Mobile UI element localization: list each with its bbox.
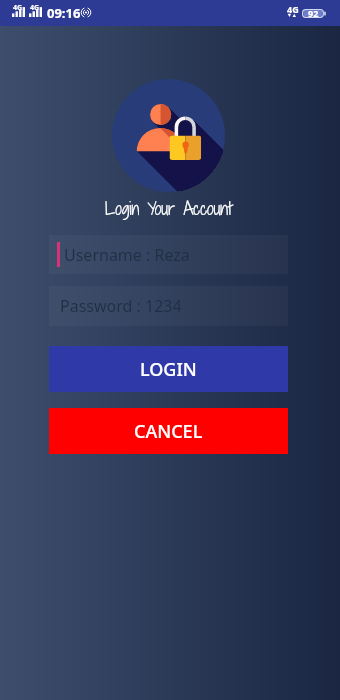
staticText: Login Your Account [105,196,232,221]
button[interactable]: LOGIN [49,346,288,392]
staticText: 4G [13,3,23,13]
staticText: Username : Reza [64,244,190,266]
button[interactable]: Username : Reza [49,235,288,274]
staticText: 92 [308,7,319,19]
staticText: 4G [287,3,299,15]
button[interactable]: Password : 1234 [49,286,288,326]
staticText: 09:16 [47,4,81,22]
staticText: LOGIN [140,357,197,382]
staticText: CANCEL [134,419,203,444]
staticText: 4G [30,3,40,13]
staticText: Password : 1234 [60,295,182,317]
button[interactable]: CANCEL [49,408,288,454]
